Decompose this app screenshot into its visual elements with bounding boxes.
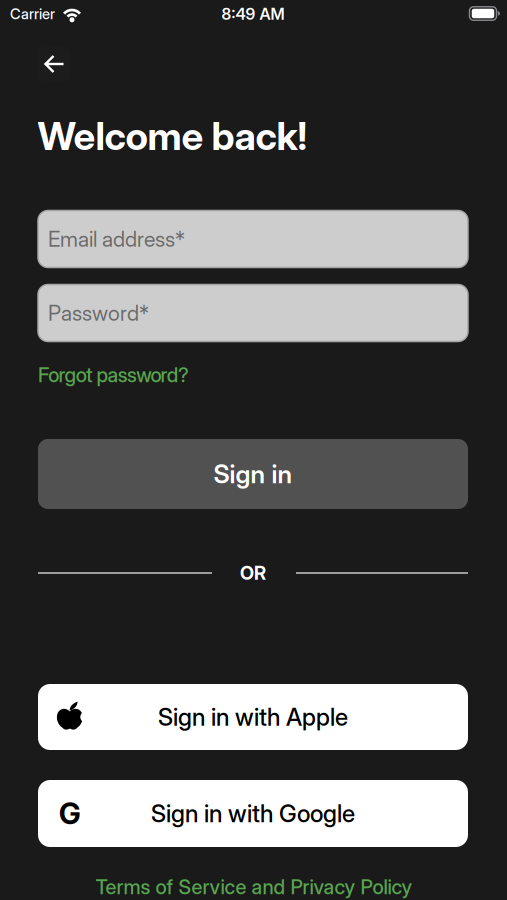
staticText: 8:49 AM: [221, 5, 284, 23]
staticText: Welcome back!: [37, 113, 307, 159]
staticText: Forgot password?: [38, 363, 189, 387]
button[interactable]: Password*: [38, 284, 468, 341]
staticText: Sign in with Apple: [158, 703, 348, 731]
button[interactable]: [37, 47, 71, 81]
button[interactable]: Forgot password?: [38, 363, 189, 387]
button[interactable]: Terms of Service and Privacy Policy: [95, 875, 412, 899]
staticText: OR: [240, 562, 266, 584]
button[interactable]: Sign in with Apple: [38, 684, 468, 750]
staticText: Sign in with Google: [151, 799, 355, 828]
button[interactable]: Sign in with Google: [38, 780, 468, 847]
staticText: G: [59, 796, 81, 831]
staticText: Password*: [48, 300, 149, 326]
button[interactable]: Sign in: [38, 439, 468, 509]
staticText: Email address*: [48, 226, 185, 252]
staticText: Sign in: [213, 459, 292, 489]
staticText: Terms of Service and Privacy Policy: [95, 875, 412, 899]
button[interactable]: Email address*: [38, 210, 468, 267]
staticText: Carrier: [10, 5, 55, 23]
